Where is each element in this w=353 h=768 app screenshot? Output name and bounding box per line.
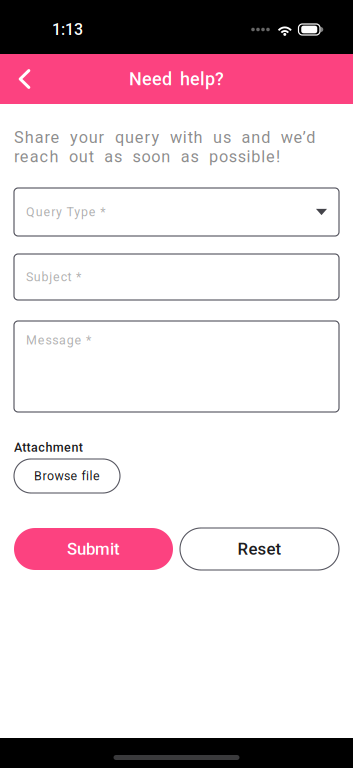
- button[interactable]: Query Type *: [14, 188, 339, 236]
- staticText: Subject *: [26, 270, 81, 284]
- button[interactable]: Subject *: [14, 254, 339, 300]
- button[interactable]: Message *: [14, 321, 339, 412]
- button[interactable]: Reset: [180, 528, 339, 570]
- staticText: Attachment: [14, 440, 83, 455]
- staticText: Reset: [237, 539, 281, 559]
- staticText: Submit: [67, 539, 120, 559]
- staticText: 1:13: [52, 20, 83, 39]
- staticText: Browse file: [34, 469, 100, 483]
- staticText: Message *: [26, 333, 91, 347]
- staticText: Query Type *: [26, 205, 105, 219]
- button[interactable]: Back: [0, 54, 50, 104]
- staticText: Share your query with us and we’d reach …: [14, 128, 315, 166]
- button[interactable]: Submit: [14, 528, 173, 570]
- button[interactable]: Browse file: [14, 459, 120, 493]
- staticText: Need help?: [129, 68, 224, 90]
